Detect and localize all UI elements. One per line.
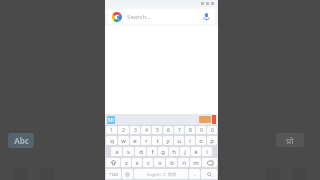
staticText: 9 bbox=[200, 127, 203, 134]
staticText: n bbox=[182, 159, 186, 167]
button[interactable]: Search... bbox=[108, 9, 215, 24]
button[interactable]: m bbox=[190, 158, 201, 167]
button[interactable]: y bbox=[163, 136, 173, 145]
button[interactable]: 8 bbox=[185, 126, 195, 134]
button[interactable]: v bbox=[154, 158, 165, 167]
button[interactable]: Voice search bbox=[202, 12, 211, 21]
button[interactable]: s bbox=[123, 147, 134, 156]
button[interactable]: Logo badge bbox=[276, 133, 304, 147]
button[interactable]: n bbox=[178, 158, 189, 167]
staticText: 8 bbox=[189, 127, 192, 134]
button[interactable]: i bbox=[185, 136, 195, 145]
button[interactable]: 7 bbox=[174, 126, 184, 134]
staticText: a bbox=[115, 148, 119, 156]
button[interactable]: q bbox=[106, 136, 117, 145]
staticText: q bbox=[110, 137, 114, 145]
staticText: w bbox=[121, 137, 126, 145]
button[interactable]: ?123 bbox=[106, 169, 121, 179]
staticText: l bbox=[206, 148, 208, 156]
staticText: f bbox=[151, 148, 154, 156]
staticText: y bbox=[166, 137, 170, 145]
button[interactable]: 9 bbox=[196, 126, 206, 134]
button[interactable]: c bbox=[143, 158, 153, 167]
staticText: s bbox=[127, 148, 130, 156]
staticText: x bbox=[135, 159, 139, 167]
button[interactable]: g bbox=[158, 147, 168, 156]
staticText: o bbox=[199, 137, 203, 145]
button[interactable]: o bbox=[196, 136, 206, 145]
staticText: ?123 bbox=[109, 172, 118, 177]
button[interactable]: 1 bbox=[106, 126, 117, 134]
button[interactable]: 2 bbox=[118, 126, 129, 134]
staticText: i bbox=[189, 137, 191, 145]
staticText: t bbox=[156, 137, 159, 145]
staticText: 1 bbox=[110, 127, 113, 134]
staticText: Search... bbox=[127, 13, 151, 21]
staticText: e bbox=[133, 137, 137, 145]
button[interactable]: 4 bbox=[141, 126, 151, 134]
staticText: z bbox=[125, 159, 128, 167]
button[interactable]: b bbox=[166, 158, 177, 167]
staticText: हिन्दी bbox=[168, 172, 176, 177]
button[interactable]: e bbox=[130, 136, 140, 145]
button[interactable]: p bbox=[207, 136, 217, 145]
staticText: c bbox=[147, 159, 150, 167]
staticText: 6 bbox=[167, 127, 170, 134]
button[interactable]: a bbox=[111, 147, 122, 156]
button[interactable]: 5 bbox=[152, 126, 162, 134]
button[interactable]: l bbox=[202, 147, 212, 156]
button[interactable]: h bbox=[169, 147, 179, 156]
staticText: p bbox=[210, 137, 214, 145]
staticText: b bbox=[170, 159, 174, 167]
button[interactable]: d bbox=[135, 147, 146, 156]
button[interactable]: r bbox=[141, 136, 151, 145]
staticText: v bbox=[158, 159, 162, 167]
button[interactable]: x bbox=[132, 158, 142, 167]
staticText: 3 bbox=[134, 127, 137, 134]
staticText: प्रो bbox=[286, 135, 294, 146]
staticText: r bbox=[145, 137, 148, 145]
button[interactable]: w bbox=[118, 136, 129, 145]
staticText: 0 bbox=[211, 127, 214, 134]
staticText: k bbox=[194, 148, 198, 156]
staticText: h bbox=[172, 148, 176, 156]
staticText: 4 bbox=[145, 127, 148, 134]
staticText: 7 bbox=[178, 127, 181, 134]
button[interactable]: . bbox=[189, 169, 200, 179]
button[interactable]: k bbox=[191, 147, 201, 156]
button[interactable]: Suggestion bbox=[199, 116, 211, 123]
button[interactable]: u bbox=[174, 136, 184, 145]
button[interactable]: Space bbox=[134, 169, 188, 179]
button[interactable]: Settings bbox=[122, 169, 133, 179]
staticText: 2 bbox=[122, 127, 125, 134]
button[interactable]: z bbox=[121, 158, 131, 167]
staticText: g bbox=[161, 148, 165, 156]
staticText: 5 bbox=[156, 127, 159, 134]
button[interactable]: 3 bbox=[130, 126, 140, 134]
staticText: m bbox=[193, 159, 199, 167]
button[interactable]: 0 bbox=[207, 126, 217, 134]
button[interactable]: f bbox=[147, 147, 157, 156]
button[interactable]: j bbox=[180, 147, 190, 156]
button[interactable]: Keyboard app bbox=[107, 116, 115, 124]
button[interactable]: Backspace bbox=[202, 158, 217, 167]
button[interactable]: Shift bbox=[106, 158, 120, 167]
button[interactable]: Search bbox=[201, 169, 217, 179]
staticText: u bbox=[177, 137, 181, 145]
staticText: Abc bbox=[14, 135, 29, 146]
staticText: English bbox=[147, 172, 161, 177]
staticText: . bbox=[194, 170, 196, 178]
button[interactable]: t bbox=[152, 136, 162, 145]
staticText: d bbox=[139, 148, 143, 156]
button[interactable]: 6 bbox=[163, 126, 173, 134]
staticText: j bbox=[184, 148, 186, 156]
button[interactable]: Abc badge bbox=[8, 133, 34, 148]
